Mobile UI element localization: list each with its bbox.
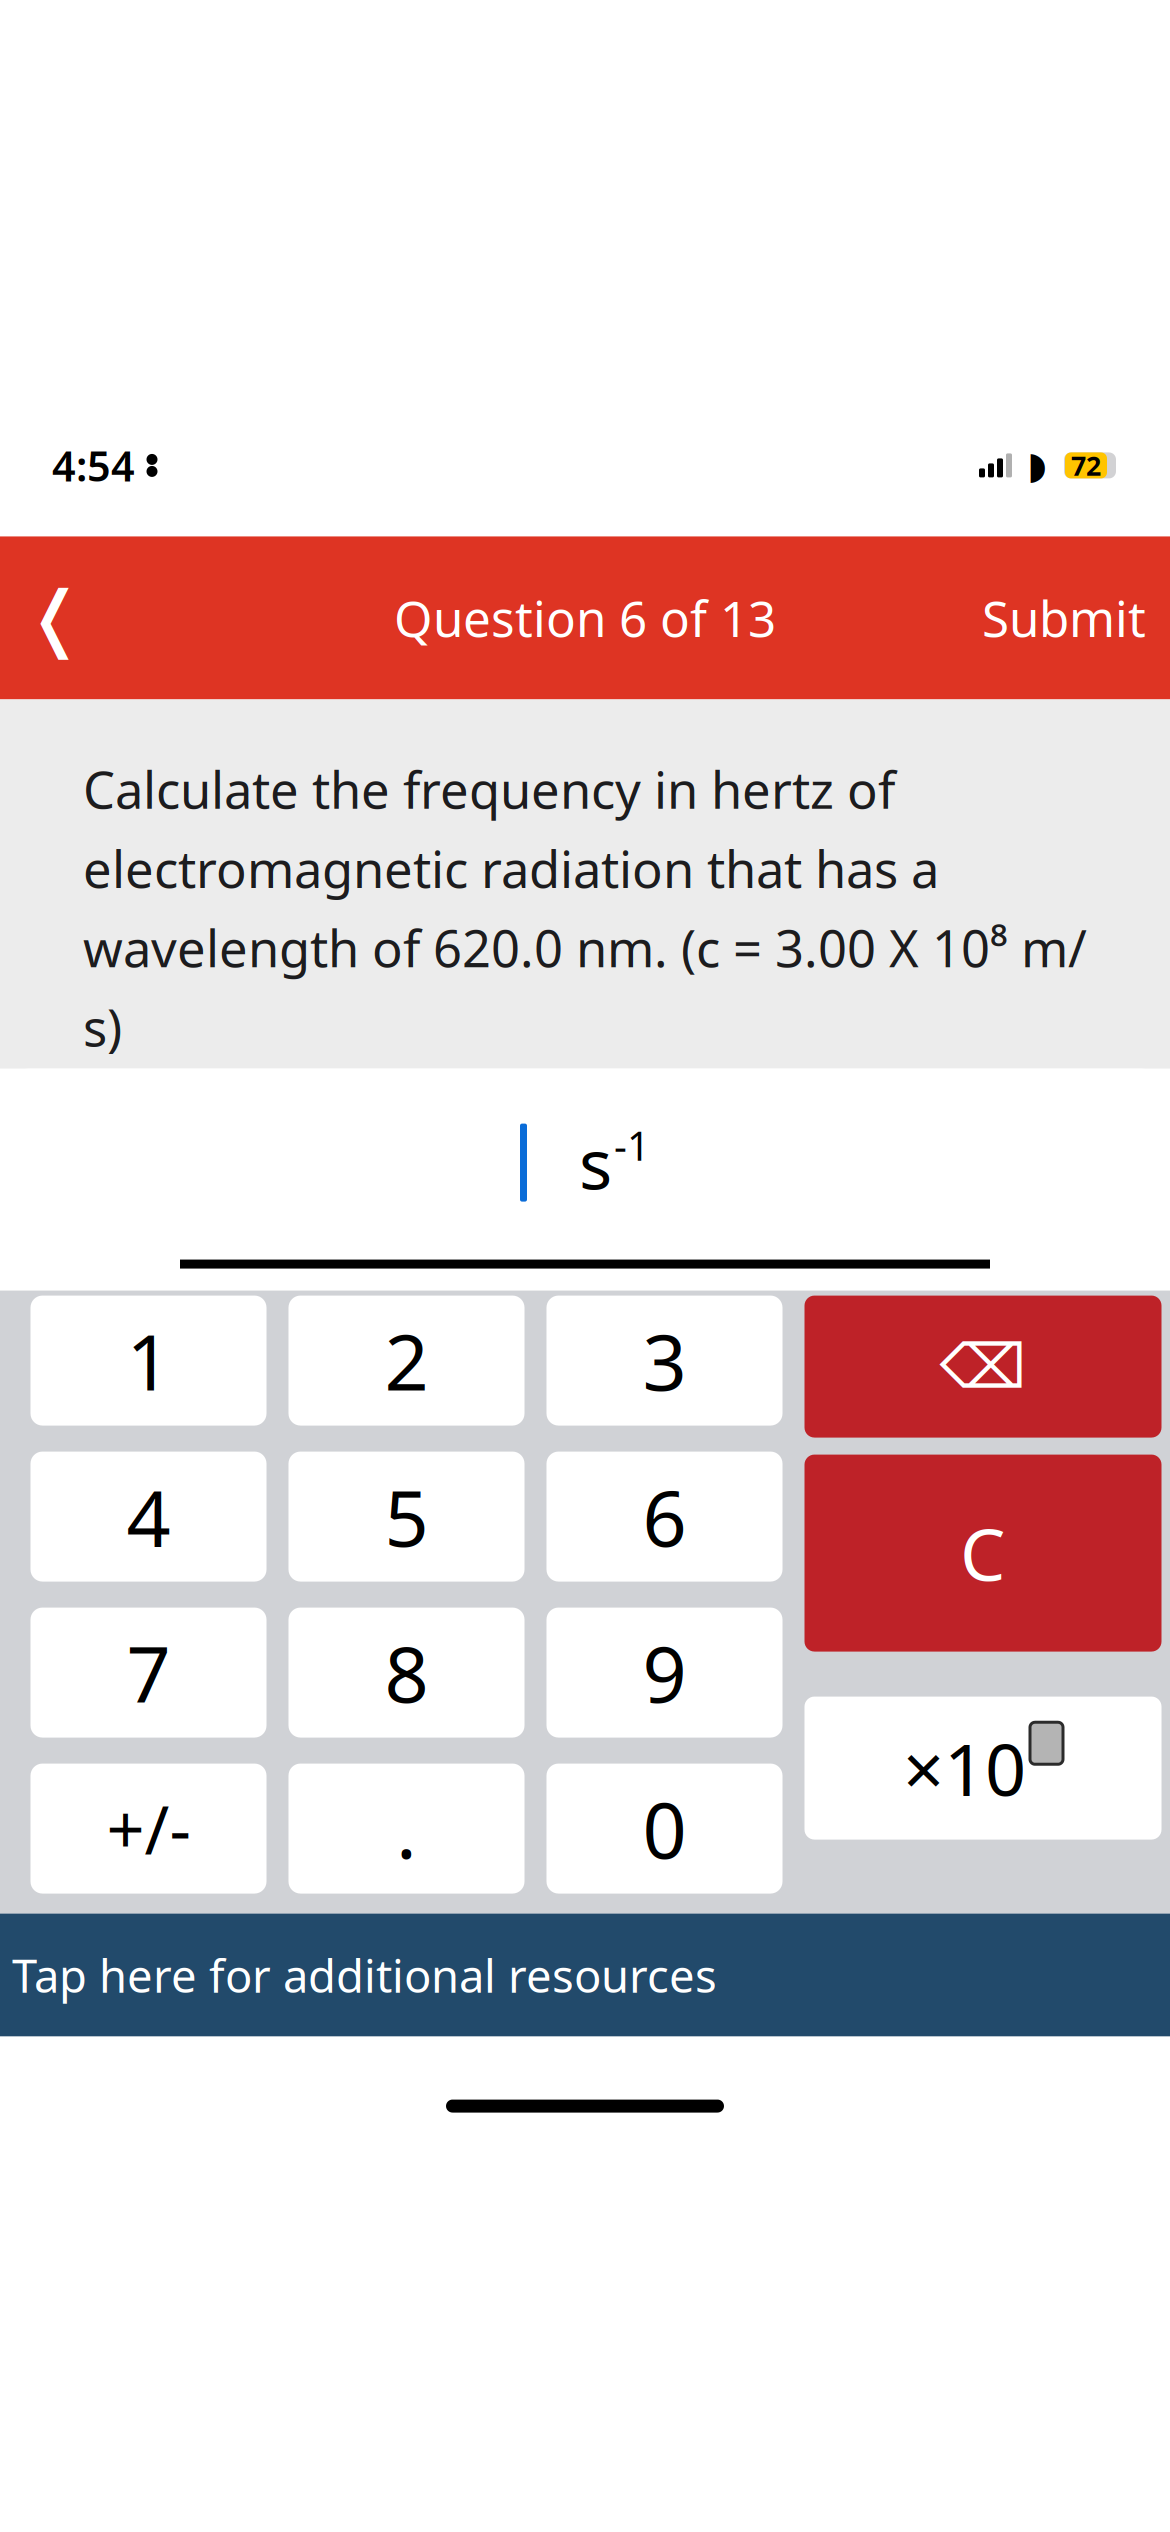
staticText: ❬	[25, 577, 85, 659]
button[interactable]: .	[288, 1764, 524, 1894]
staticText: .	[396, 1777, 417, 1880]
staticText: -1	[614, 1119, 650, 1172]
staticText: Calculate the frequency in hertz of	[83, 755, 895, 823]
button[interactable]: 4	[30, 1452, 266, 1582]
staticText: s)	[83, 993, 122, 1061]
button[interactable]: Delete	[804, 1296, 1161, 1438]
button[interactable]: C	[804, 1455, 1161, 1652]
button[interactable]: 6	[546, 1452, 782, 1582]
button[interactable]: 3	[546, 1296, 782, 1426]
staticText: 5	[384, 1465, 428, 1568]
button[interactable]: Submit	[958, 568, 1170, 668]
button[interactable]: Tap here for additional resources	[0, 1914, 1170, 2037]
staticText: 4	[126, 1465, 170, 1568]
button[interactable]: 7	[30, 1608, 266, 1738]
button[interactable]: 8	[288, 1608, 524, 1738]
button[interactable]: Times ten to the power	[804, 1697, 1161, 1840]
staticText: 7	[126, 1621, 170, 1724]
staticText: +/-	[106, 1784, 190, 1873]
button[interactable]: Back	[0, 568, 110, 668]
button[interactable]: 2	[288, 1296, 524, 1426]
staticText: 1	[126, 1309, 170, 1412]
button[interactable]: 5	[288, 1452, 524, 1582]
staticText: electromagnetic radiation that has a	[83, 835, 939, 902]
staticText: Tap here for additional resources	[12, 1945, 717, 2005]
button[interactable]: 0	[546, 1764, 782, 1894]
staticText: 2	[384, 1309, 428, 1412]
staticText: Question 6 of 13	[394, 585, 776, 651]
staticText: ×10	[903, 1720, 1026, 1816]
staticText: ⌫	[939, 1332, 1026, 1401]
button[interactable]: 9	[546, 1608, 782, 1738]
staticText: 6	[642, 1465, 686, 1568]
staticText: 8	[384, 1621, 428, 1724]
button[interactable]: +/-	[30, 1764, 266, 1894]
staticText: wavelength of 620.0 nm. (c = 3.00 X 10⁸ …	[83, 914, 1087, 981]
staticText: 4:54	[52, 438, 135, 493]
staticText: C	[960, 1505, 1006, 1601]
staticText: s	[579, 1117, 612, 1209]
staticText: Submit	[982, 585, 1146, 651]
button[interactable]: 1	[30, 1296, 266, 1426]
staticText: 9	[642, 1621, 686, 1724]
staticText: 3	[642, 1309, 686, 1412]
staticText: 0	[642, 1777, 686, 1880]
staticText: 72	[1071, 448, 1101, 483]
staticText: ◗	[1027, 444, 1047, 487]
